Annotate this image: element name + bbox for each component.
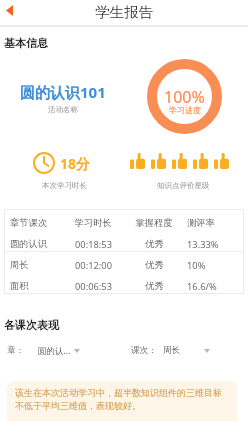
staticText: 课次： (131, 345, 157, 356)
staticText: 各课次表现 (4, 318, 59, 332)
staticText: 优秀 (145, 259, 164, 271)
staticText: 周长 (163, 345, 180, 356)
staticText: 圆的认... (38, 345, 71, 357)
staticText: 圆的认识101 (20, 82, 106, 102)
staticText: 00:18:53 (75, 238, 112, 251)
staticText: 圆的认识 (10, 238, 48, 250)
staticText: 00:12:00 (75, 259, 112, 272)
staticText: 基本信息 (4, 36, 48, 50)
staticText: 优秀 (145, 238, 164, 250)
staticText: 本次学习时长 (42, 181, 87, 190)
staticText: 面积 (10, 280, 29, 292)
staticText: 知识点评价星级 (157, 181, 210, 190)
staticText: 掌握程度 (135, 217, 173, 229)
staticText: 该生在本次活动学习中，超半数知识组件的三维目标 不低于平均三维值，表现较好。 (15, 387, 222, 412)
staticText: 16.6/% (187, 280, 217, 293)
staticText: 周长 (10, 259, 29, 271)
staticText: 10% (187, 259, 206, 272)
staticText: 学习进度 (169, 105, 201, 115)
staticText: 00:06:53 (75, 280, 112, 293)
staticText: 100% (164, 86, 205, 108)
staticText: 活动名称 (48, 105, 78, 114)
staticText: 章： (7, 345, 24, 356)
staticText: 优秀 (145, 280, 164, 292)
staticText: 章节课次 (10, 217, 48, 229)
staticText: 学习时长 (74, 217, 112, 229)
staticText: 13.33% (187, 238, 219, 251)
staticText: 18分 (60, 154, 91, 173)
staticText: 学生报告 (95, 3, 153, 21)
button[interactable]: 该生在本次活动学习中，超半数知识组件的三维目标 不低于平均三维值，表现较好。 (7, 381, 237, 421)
staticText: 测评率 (187, 217, 215, 229)
button[interactable]: Back (0, 0, 18, 25)
